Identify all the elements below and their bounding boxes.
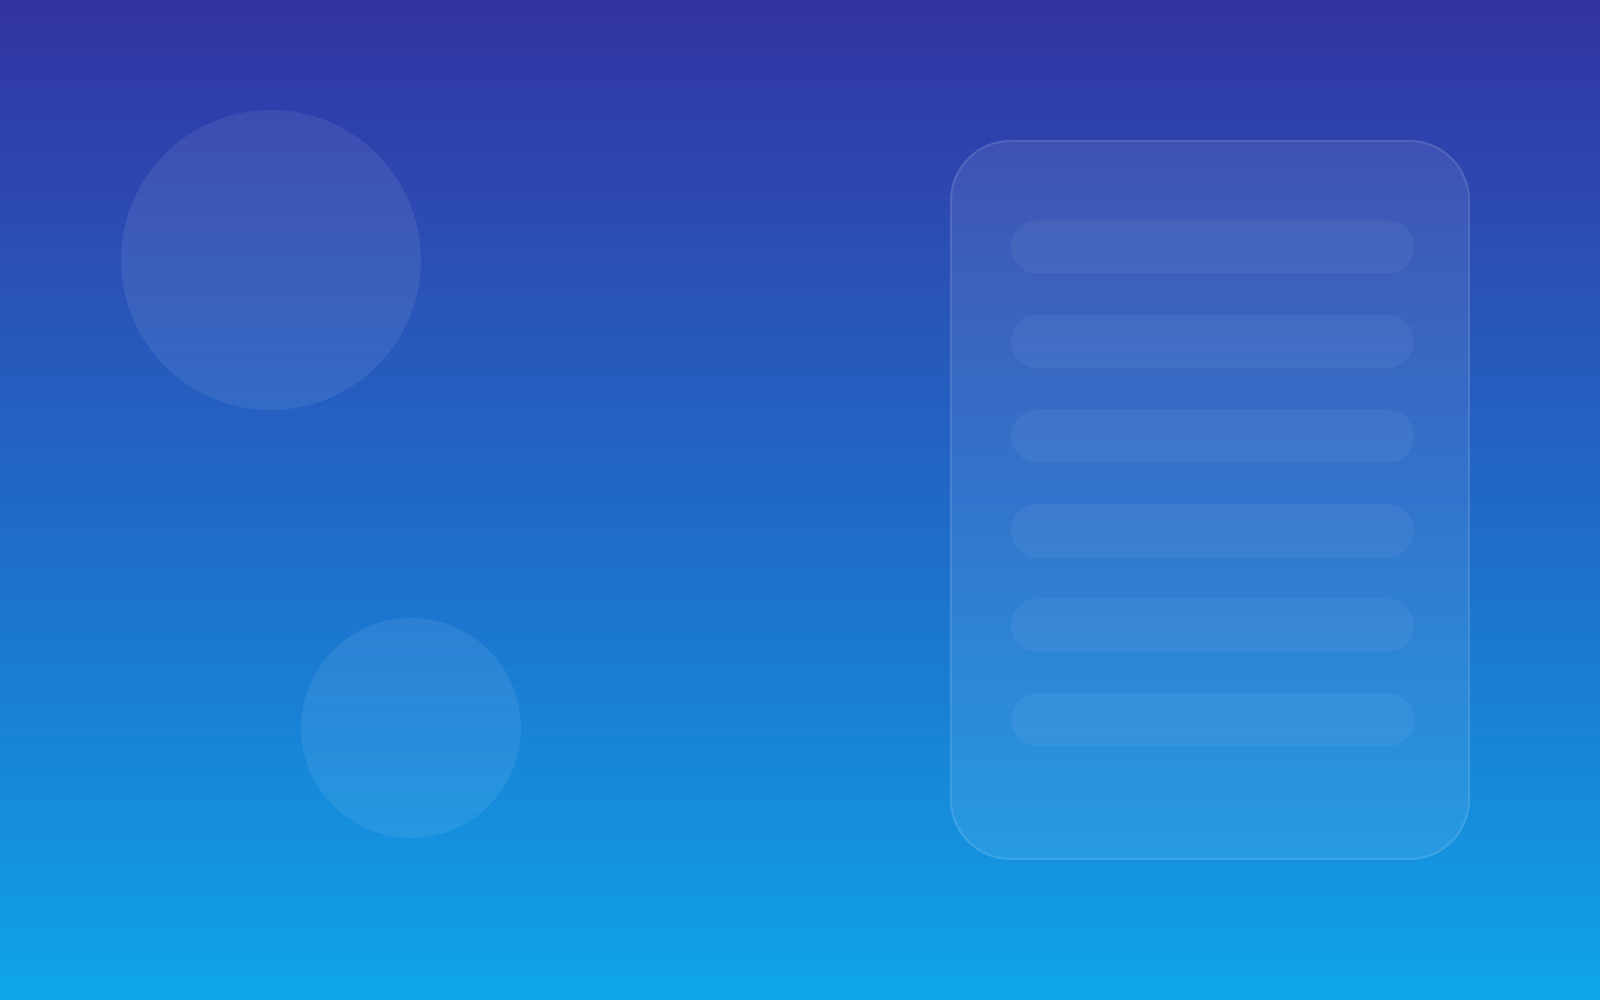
button[interactable]: Loading content [950,140,1470,860]
